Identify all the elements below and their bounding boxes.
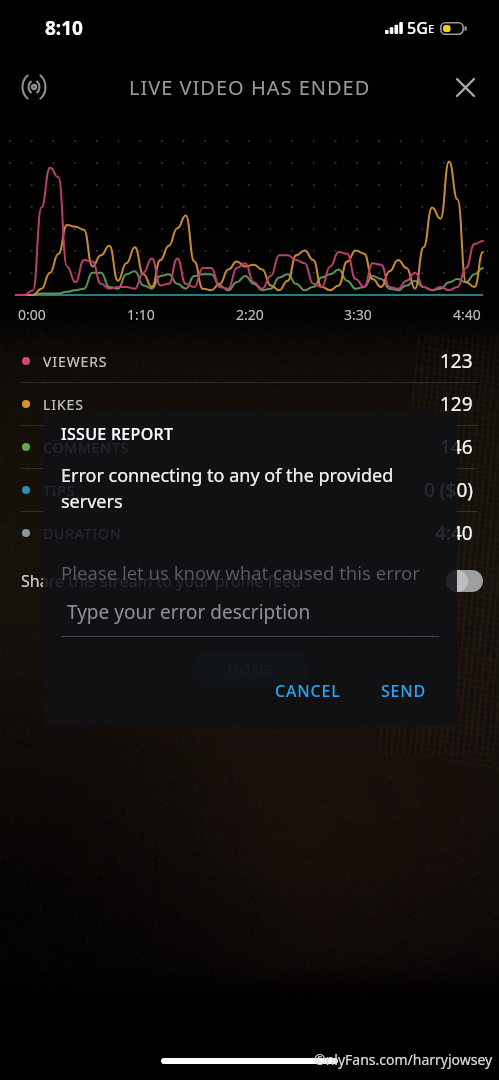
button[interactable]: SEND	[371, 674, 437, 708]
staticText: 123	[440, 348, 473, 374]
button[interactable]: TIPS	[0, 469, 499, 511]
staticText: ISSUE REPORT	[61, 423, 174, 445]
button[interactable]: Share this stream to your profile feed	[0, 554, 499, 607]
staticText: 0:00	[18, 305, 46, 324]
staticText: ©nlyFans.com/harryjowsey	[314, 1050, 493, 1069]
button[interactable]: CANCEL	[261, 674, 355, 708]
staticText: Share this stream to your profile feed	[21, 570, 301, 592]
staticText: 1:10	[127, 305, 155, 324]
staticText: Please let us know what caused this erro…	[61, 560, 420, 585]
staticText: Type your error description	[67, 599, 311, 625]
staticText: Error connecting to any of the provided …	[61, 463, 411, 513]
staticText: 5G	[407, 17, 428, 39]
staticText: E	[428, 21, 435, 36]
staticText: LIVE VIDEO HAS ENDED	[129, 74, 371, 101]
staticText: 0 ($0)	[424, 477, 473, 503]
button[interactable]: Live broadcast	[10, 63, 58, 111]
button[interactable]: DONE	[192, 650, 308, 688]
staticText: 4:40	[453, 305, 481, 324]
button[interactable]: COMMENTS	[0, 426, 499, 468]
button[interactable]: Close	[443, 65, 487, 109]
staticText: COMMENTS	[43, 438, 129, 457]
staticText: DURATION	[43, 524, 122, 543]
staticText: 129	[440, 391, 473, 417]
staticText: 2:20	[236, 305, 264, 324]
staticText: 4:40	[435, 520, 473, 546]
staticText: 146	[440, 434, 473, 460]
button[interactable]: VIEWERS	[0, 340, 499, 382]
staticText: 8:10	[45, 15, 83, 41]
staticText: VIEWERS	[43, 352, 108, 371]
button[interactable]: DURATION	[0, 512, 499, 554]
button[interactable]: LIKES	[0, 383, 499, 425]
staticText: CANCEL	[275, 680, 341, 702]
staticText: LIKES	[43, 395, 84, 414]
staticText: TIPS	[43, 481, 76, 500]
staticText: SEND	[381, 680, 427, 702]
staticText: 3:30	[344, 305, 372, 324]
